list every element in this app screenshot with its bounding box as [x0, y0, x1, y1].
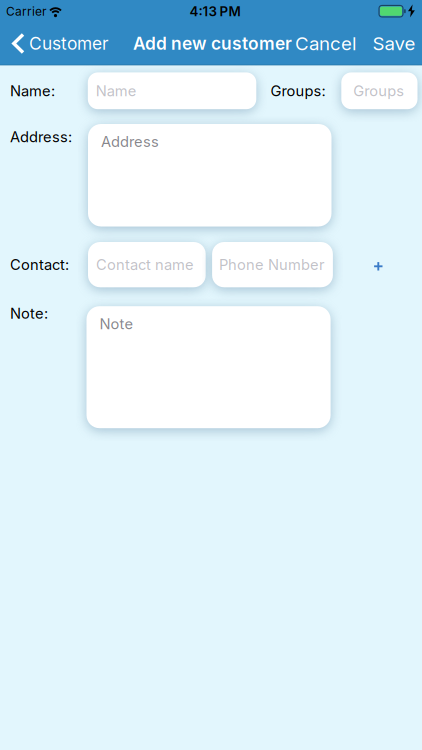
staticText: Address: — [10, 128, 72, 146]
button[interactable]: Cancel — [295, 32, 357, 54]
button[interactable]: Name — [88, 72, 256, 109]
staticText: Contact name — [96, 256, 194, 273]
button[interactable]: Contact name — [88, 242, 206, 287]
staticText: Note: — [10, 305, 48, 322]
staticText: Note — [99, 315, 133, 332]
button[interactable]: Groups — [341, 72, 417, 109]
staticText: Customer — [29, 33, 109, 54]
staticText: Name — [96, 82, 137, 99]
staticText: Groups: — [270, 82, 325, 99]
staticText: Cancel — [295, 32, 357, 54]
button[interactable]: Address — [88, 124, 331, 226]
staticText: Save — [372, 32, 415, 54]
button[interactable]: Phone Number — [212, 242, 333, 287]
staticText: Groups — [353, 82, 404, 99]
staticText: 4:13 PM — [189, 4, 240, 19]
staticText: Contact: — [10, 256, 69, 273]
button[interactable]: Note — [86, 306, 331, 428]
staticText: Phone Number — [219, 256, 325, 273]
button[interactable] — [367, 255, 389, 277]
staticText: Carrier — [6, 4, 47, 19]
staticText: Address — [101, 133, 159, 150]
button[interactable]: Save — [372, 32, 415, 54]
button[interactable]: Customer — [12, 33, 162, 54]
staticText: Name: — [10, 82, 55, 99]
staticText: Add new customer — [133, 33, 292, 54]
